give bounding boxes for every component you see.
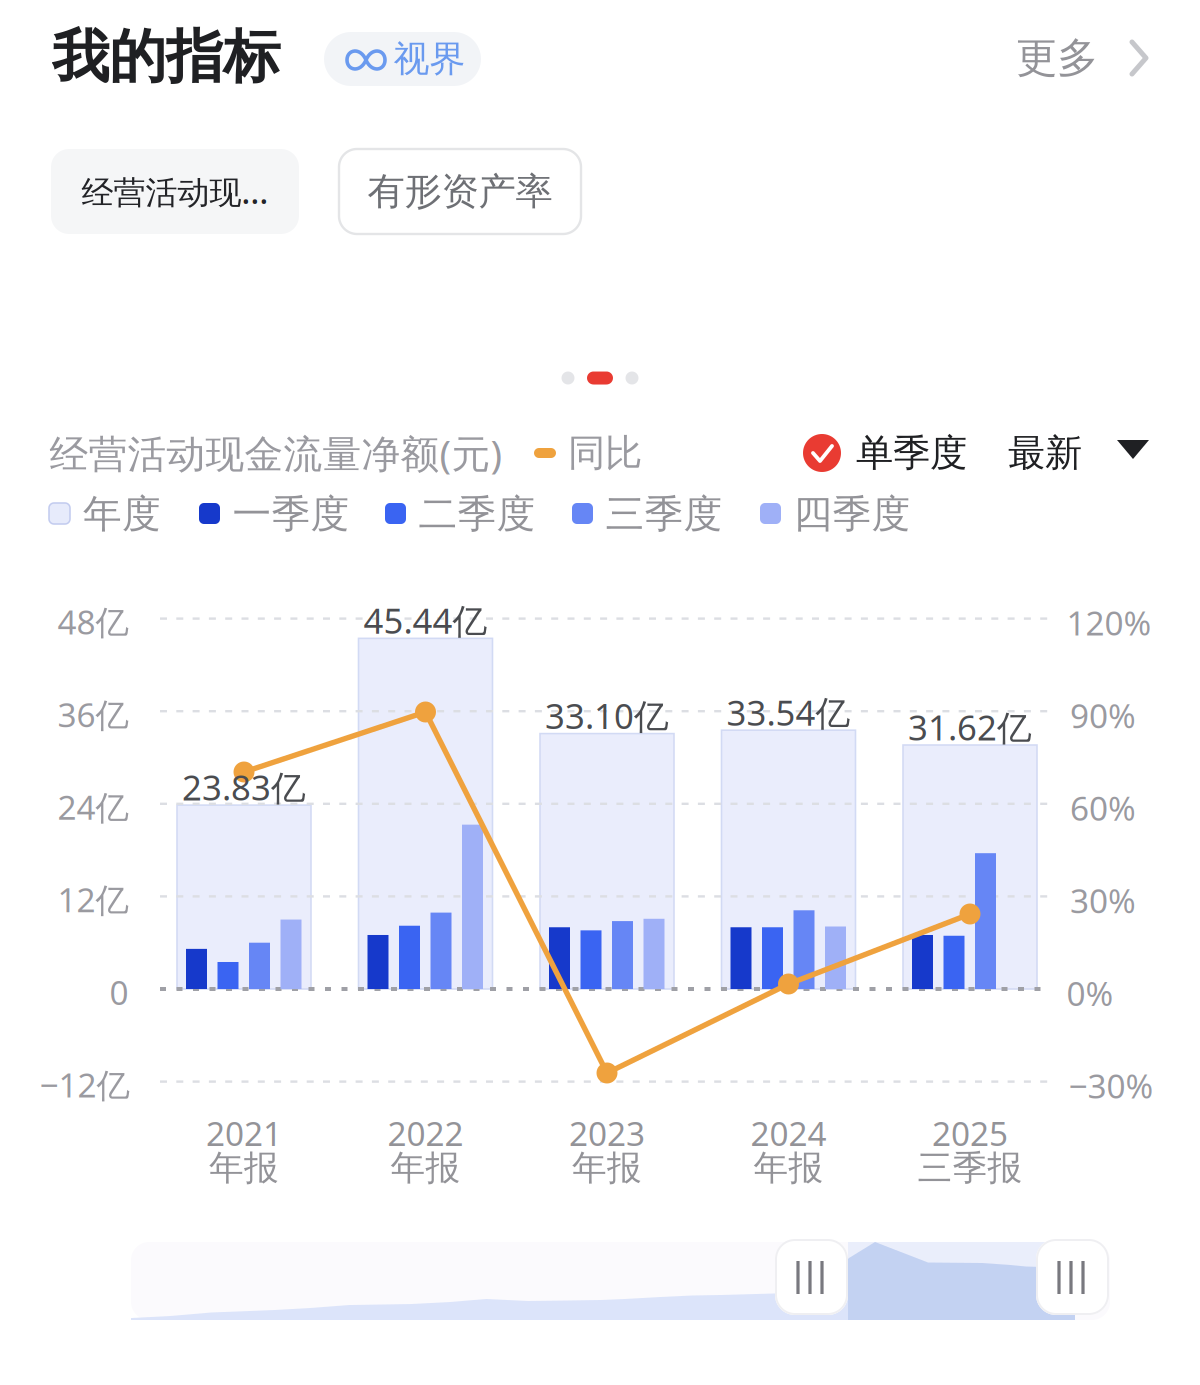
staticText: 31.62亿 <box>908 704 1032 750</box>
button[interactable]: 有形资产率 <box>339 149 581 234</box>
staticText: 最新 <box>1008 430 1082 476</box>
staticText: 经营活动现... <box>81 170 268 213</box>
staticText: 2025 <box>932 1111 1008 1155</box>
button[interactable]: 三季度 <box>572 496 721 532</box>
staticText: 四季度 <box>793 490 910 538</box>
button[interactable]: 二季度 <box>385 496 534 532</box>
staticText: 一季度 <box>232 490 349 538</box>
staticText: 33.54亿 <box>726 689 850 735</box>
button[interactable]: Adjust range end <box>1036 1239 1109 1315</box>
staticText: 有形资产率 <box>367 169 552 214</box>
staticText: 24亿 <box>57 785 128 829</box>
staticText: 视界 <box>393 37 465 81</box>
staticText: 2023 <box>569 1111 645 1155</box>
button[interactable]: Adjust range start <box>775 1239 848 1315</box>
staticText: 经营活动现金流量净额(元) <box>49 427 502 479</box>
staticText: 年报 <box>390 1147 460 1189</box>
button[interactable]: 更多 <box>1015 28 1155 88</box>
staticText: 36亿 <box>57 692 128 736</box>
staticText: 45.44亿 <box>363 597 487 643</box>
staticText: 同比 <box>568 430 642 476</box>
button[interactable]: Page 2 of 3 <box>560 368 640 388</box>
staticText: 年报 <box>209 1147 279 1189</box>
staticText: 单季度 <box>856 430 967 476</box>
staticText: 120% <box>1066 600 1151 645</box>
staticText: −12亿 <box>39 1062 129 1107</box>
staticText: 二季度 <box>418 490 535 538</box>
staticText: 0% <box>1066 971 1113 1015</box>
staticText: −30% <box>1068 1063 1153 1108</box>
button[interactable]: 视界 <box>324 32 481 86</box>
staticText: 三季度 <box>605 490 722 538</box>
staticText: 2021 <box>206 1111 282 1155</box>
staticText: 2022 <box>387 1111 463 1155</box>
button[interactable]: 一季度 <box>199 496 348 532</box>
staticText: 23.83亿 <box>182 764 306 810</box>
staticText: 33.10亿 <box>545 693 669 739</box>
staticText: 60% <box>1070 786 1136 830</box>
staticText: 三季报 <box>917 1147 1022 1189</box>
staticText: 年度 <box>83 490 161 538</box>
staticText: 48亿 <box>57 599 128 644</box>
staticText: 2024 <box>750 1111 826 1155</box>
button[interactable]: 四季度 <box>760 496 909 532</box>
staticText: 30% <box>1070 878 1136 923</box>
staticText: 更多 <box>1016 33 1098 83</box>
staticText: 90% <box>1070 693 1136 737</box>
staticText: 年报 <box>753 1147 823 1189</box>
staticText: 12亿 <box>57 877 128 922</box>
staticText: 我的指标 <box>52 22 280 92</box>
button[interactable]: 最新 <box>1005 430 1155 476</box>
staticText: 0 <box>109 970 128 1014</box>
button[interactable]: 经营活动现... <box>51 149 299 234</box>
button[interactable]: 年度 <box>49 496 160 532</box>
staticText: 年报 <box>572 1147 642 1189</box>
button[interactable]: 单季度 <box>803 430 968 476</box>
